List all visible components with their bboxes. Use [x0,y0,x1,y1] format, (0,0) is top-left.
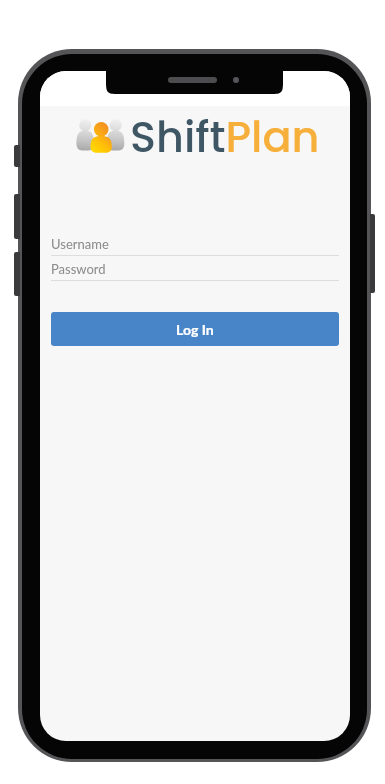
staticText: ShiftPlan [130,107,320,167]
button[interactable]: Log In [51,312,339,346]
staticText: Password [51,261,106,277]
staticText: Log In [176,321,214,338]
button[interactable]: Username [51,233,339,256]
other: ShiftPlan logo [75,119,124,153]
staticText: Username [51,236,109,252]
button[interactable]: Password [51,258,339,281]
